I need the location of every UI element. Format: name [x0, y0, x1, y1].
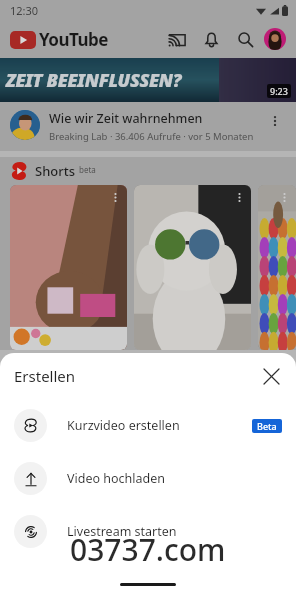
button[interactable]: Livestream starten: [0, 505, 296, 558]
button[interactable]: Account: [264, 28, 286, 50]
button[interactable]: Cast: [160, 22, 194, 56]
button[interactable]: Video hochladen: [0, 452, 296, 505]
staticText: 9:23: [270, 85, 288, 97]
button[interactable]: Short options: [258, 185, 296, 350]
staticText: Video hochladen: [67, 470, 165, 487]
button[interactable]: Short options: [134, 185, 251, 350]
button[interactable]: Close: [254, 359, 288, 393]
staticText: Wie wir Zeit wahrnehmen: [49, 110, 203, 127]
button[interactable]: Kurzvideo erstellen: [0, 399, 296, 452]
staticText: Beta: [257, 420, 277, 432]
staticText: Breaking Lab · 36.406 Aufrufe · vor 5 Mo…: [49, 130, 254, 143]
staticText: Erstellen: [14, 366, 76, 386]
button[interactable]: Shorts: [0, 157, 296, 185]
staticText: beta: [79, 164, 96, 175]
staticText: ZEIT BEEINFLUSSEN?: [6, 68, 182, 93]
button[interactable]: Short options: [231, 189, 247, 205]
staticText: 03737.com: [70, 529, 226, 570]
button[interactable]: Short options: [107, 189, 123, 205]
button[interactable]: Short options: [276, 189, 292, 205]
button[interactable]: Notifications: [194, 22, 228, 56]
button[interactable]: Wie wir Zeit wahrnehmen: [0, 102, 296, 151]
staticText: 12:30: [10, 3, 39, 18]
staticText: YouTube: [39, 28, 108, 51]
staticText: Kurzvideo erstellen: [67, 417, 180, 434]
button[interactable]: ZEIT BEEINFLUSSEN?: [0, 58, 296, 102]
button[interactable]: Search: [228, 22, 262, 56]
staticText: Shorts: [35, 162, 76, 180]
button[interactable]: Short options: [10, 185, 127, 350]
button[interactable]: YouTube: [10, 28, 108, 51]
button[interactable]: More options: [264, 110, 286, 132]
staticText: Livestream starten: [67, 523, 177, 540]
